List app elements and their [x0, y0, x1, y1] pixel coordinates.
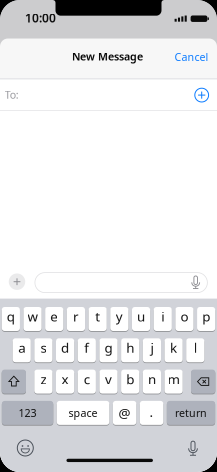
button[interactable]: b — [121, 370, 139, 394]
staticText: x — [62, 370, 69, 388]
staticText: To: — [5, 88, 19, 102]
staticText: r — [73, 307, 79, 325]
staticText: a — [18, 339, 25, 356]
button[interactable]: Apps — [9, 273, 25, 290]
button[interactable]: To — [0, 79, 217, 110]
button[interactable]: k — [164, 338, 183, 362]
staticText: p — [202, 307, 210, 325]
button[interactable]: f — [78, 338, 96, 362]
button[interactable]: Delete — [191, 370, 215, 394]
button[interactable]: p — [197, 307, 215, 331]
staticText: 10:00 — [25, 10, 56, 26]
button[interactable]: g — [99, 338, 118, 362]
staticText: t — [95, 307, 100, 325]
staticText: q — [7, 307, 15, 325]
button[interactable]: h — [121, 338, 139, 362]
staticText: j — [150, 339, 153, 356]
staticText: o — [180, 307, 188, 325]
button[interactable]: Emoji — [17, 440, 33, 456]
button[interactable]: l — [186, 338, 204, 362]
staticText: return — [175, 406, 207, 420]
button[interactable]: w — [23, 307, 42, 331]
button[interactable]: x — [56, 370, 74, 394]
button[interactable]: Add Contact — [195, 88, 209, 102]
staticText: s — [40, 339, 46, 356]
button[interactable]: q — [2, 307, 20, 331]
button[interactable]: t — [89, 307, 107, 331]
button[interactable]: n — [143, 370, 161, 394]
button[interactable]: v — [99, 370, 118, 394]
button[interactable]: . — [140, 401, 163, 425]
staticText: d — [61, 339, 69, 356]
staticText: g — [104, 339, 112, 356]
button[interactable]: u — [132, 307, 150, 331]
staticText: k — [170, 339, 177, 356]
button[interactable]: 123 — [2, 401, 53, 425]
staticText: l — [194, 339, 197, 356]
button[interactable]: i — [154, 307, 172, 331]
button[interactable]: r — [67, 307, 85, 331]
button[interactable]: s — [34, 338, 52, 362]
staticText: m — [168, 370, 180, 388]
staticText: w — [28, 307, 38, 325]
staticText: 123 — [18, 406, 36, 420]
staticText: v — [105, 370, 112, 388]
staticText: z — [40, 370, 46, 388]
staticText: f — [84, 339, 89, 356]
button[interactable]: c — [78, 370, 96, 394]
staticText: u — [137, 307, 145, 325]
button[interactable]: Shift — [2, 370, 26, 394]
button[interactable]: Cancel — [139, 50, 209, 64]
staticText: n — [148, 370, 156, 388]
button[interactable]: Message field, dictate — [35, 273, 207, 293]
button[interactable]: o — [175, 307, 193, 331]
button[interactable]: y — [110, 307, 128, 331]
button[interactable]: m — [164, 370, 183, 394]
button[interactable]: a — [13, 338, 31, 362]
button[interactable]: j — [143, 338, 161, 362]
staticText: h — [126, 339, 134, 356]
staticText: New Message — [72, 49, 143, 63]
staticText: i — [161, 307, 164, 325]
button[interactable]: @ — [113, 401, 136, 425]
staticText: e — [50, 307, 58, 325]
staticText: space — [68, 406, 97, 420]
staticText: Cancel — [175, 50, 209, 64]
staticText: @ — [119, 404, 131, 422]
button[interactable]: e — [45, 307, 63, 331]
button[interactable]: z — [34, 370, 52, 394]
staticText: . — [150, 403, 154, 421]
button[interactable]: Dictate — [187, 441, 198, 456]
button[interactable]: d — [56, 338, 74, 362]
button[interactable]: return — [167, 401, 215, 425]
staticText: y — [116, 307, 123, 325]
button[interactable]: space — [57, 401, 109, 425]
staticText: b — [126, 370, 134, 388]
staticText: c — [84, 370, 90, 388]
